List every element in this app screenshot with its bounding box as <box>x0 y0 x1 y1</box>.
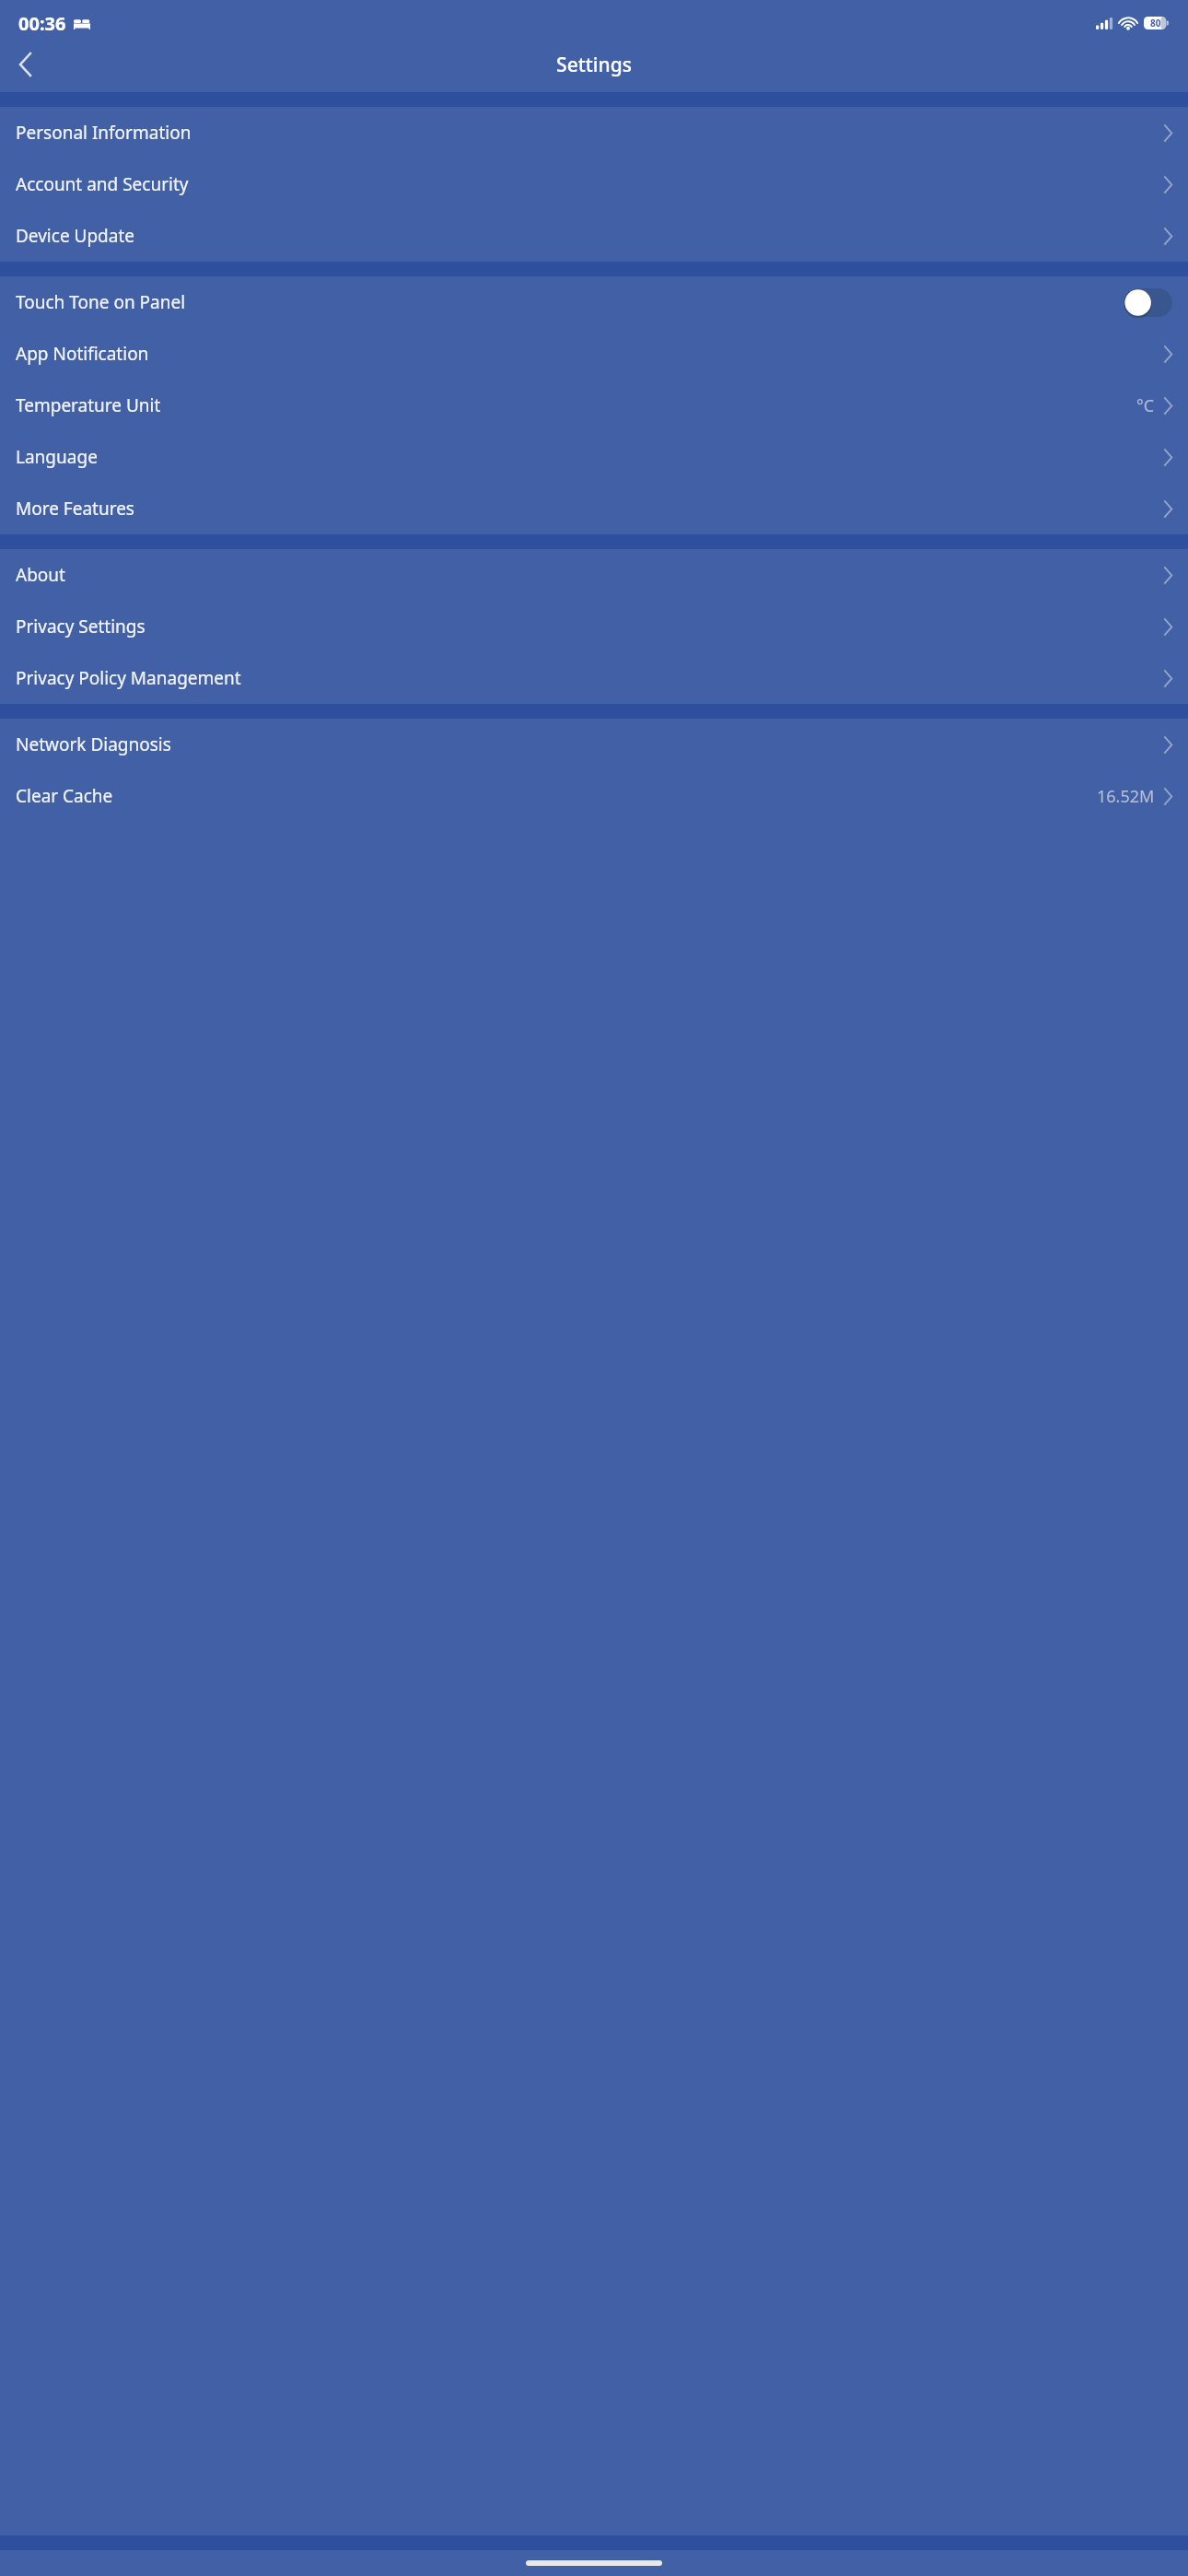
button[interactable]: Personal Information <box>0 107 1188 158</box>
button[interactable]: Privacy Policy Management <box>0 652 1188 704</box>
button[interactable]: Network Diagnosis <box>0 719 1188 770</box>
button[interactable]: Back <box>6 46 44 83</box>
staticText: More Features <box>16 497 134 521</box>
button[interactable]: Language <box>0 431 1188 483</box>
staticText: Clear Cache <box>16 784 113 808</box>
button[interactable]: Touch Tone on Panel <box>0 276 1188 328</box>
staticText: Privacy Settings <box>16 615 146 638</box>
staticText: 00:36 <box>18 11 66 36</box>
staticText: Settings <box>556 52 632 78</box>
staticText: About <box>16 563 65 587</box>
button[interactable]: Temperature Unit <box>0 380 1188 431</box>
staticText: Privacy Policy Management <box>16 666 241 690</box>
staticText: App Notification <box>16 342 149 366</box>
staticText: Account and Security <box>16 172 189 196</box>
staticText: Language <box>16 445 98 469</box>
button[interactable]: Privacy Settings <box>0 601 1188 652</box>
staticText: °C <box>1136 394 1155 417</box>
staticText: Network Diagnosis <box>16 732 171 756</box>
staticText: Temperature Unit <box>16 393 161 417</box>
staticText: Personal Information <box>16 121 192 145</box>
button[interactable]: Device Update <box>0 210 1188 262</box>
button[interactable]: About <box>0 549 1188 601</box>
button[interactable]: Touch Tone on Panel toggle, off <box>1124 288 1172 317</box>
staticText: Touch Tone on Panel <box>16 290 186 314</box>
button[interactable]: Clear Cache <box>0 770 1188 822</box>
staticText: 16.52M <box>1097 785 1155 808</box>
staticText: 80 <box>1150 17 1161 29</box>
button[interactable]: Account and Security <box>0 158 1188 210</box>
button[interactable]: App Notification <box>0 328 1188 380</box>
staticText: Device Update <box>16 224 135 248</box>
button[interactable]: More Features <box>0 483 1188 534</box>
